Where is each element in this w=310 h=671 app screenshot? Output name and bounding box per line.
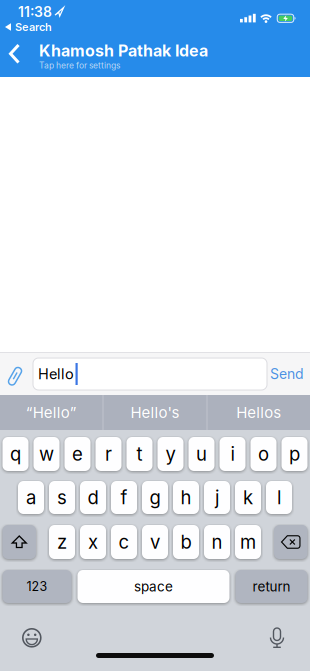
button[interactable]: “Hello” (0, 395, 102, 430)
staticText: a (26, 486, 36, 509)
staticText: o (258, 443, 269, 465)
button[interactable]: Search (0, 0, 47, 11)
button[interactable]: Send (0, 352, 46, 384)
staticText: k (243, 486, 253, 509)
staticText: g (149, 486, 160, 509)
staticText: q (10, 443, 21, 465)
staticText: b (180, 531, 191, 553)
staticText: Search (15, 20, 52, 34)
button[interactable]: p (281, 437, 307, 471)
staticText: r (105, 443, 112, 465)
button[interactable]: f (111, 481, 137, 514)
button[interactable]: b (173, 525, 199, 559)
button[interactable]: q (2, 437, 28, 471)
staticText: p (289, 443, 300, 465)
button[interactable]: z (49, 525, 75, 559)
staticText: v (150, 531, 160, 553)
button[interactable]: space (77, 570, 229, 603)
button[interactable]: s (49, 481, 75, 514)
button[interactable] (0, 430, 14, 450)
staticText: space (134, 578, 173, 595)
button[interactable]: x (80, 525, 106, 559)
button[interactable]: l (266, 481, 292, 514)
button[interactable]: c (111, 525, 137, 559)
button[interactable]: 123 (2, 570, 71, 603)
button[interactable] (0, 430, 20, 450)
staticText: Tap here for settings (39, 60, 120, 71)
staticText: “Hello” (26, 403, 77, 421)
staticText: Hello (38, 365, 74, 383)
button[interactable]: e (64, 437, 90, 471)
button[interactable] (2, 525, 36, 559)
staticText: Hellos (236, 403, 281, 421)
button[interactable]: i (219, 437, 245, 471)
button[interactable]: d (80, 481, 106, 514)
staticText: h (180, 486, 191, 509)
button[interactable]: u (188, 437, 214, 471)
staticText: w (39, 443, 54, 465)
staticText: d (87, 486, 98, 509)
staticText: s (57, 486, 67, 509)
staticText: t (136, 443, 142, 465)
button[interactable]: return (235, 570, 307, 603)
staticText: f (120, 486, 127, 509)
button[interactable]: Hello's (103, 395, 206, 430)
staticText: u (196, 443, 207, 465)
button[interactable]: Khamosh Pathak Idea (0, 0, 169, 30)
staticText: Khamosh Pathak Idea (39, 41, 208, 60)
staticText: i (230, 443, 234, 465)
button[interactable]: t (126, 437, 152, 471)
staticText: c (118, 531, 129, 553)
button[interactable]: j (204, 481, 230, 514)
button[interactable]: y (157, 437, 183, 471)
button[interactable] (0, 352, 16, 372)
button[interactable]: r (95, 437, 121, 471)
button[interactable]: m (235, 525, 261, 559)
staticText: x (88, 531, 98, 553)
staticText: n (211, 531, 222, 553)
staticText: 11:38 (18, 3, 52, 20)
button[interactable]: o (250, 437, 276, 471)
staticText: return (252, 578, 290, 595)
staticText: Send (270, 365, 304, 382)
staticText: j (215, 486, 219, 509)
staticText: z (57, 531, 67, 553)
button[interactable]: k (235, 481, 261, 514)
button[interactable]: w (33, 437, 59, 471)
button[interactable]: Hellos (207, 395, 310, 430)
staticText: y (165, 443, 175, 465)
button[interactable]: n (204, 525, 230, 559)
button[interactable] (274, 525, 307, 559)
button[interactable]: Hello (0, 352, 234, 384)
button[interactable]: g (142, 481, 168, 514)
button[interactable]: h (173, 481, 199, 514)
button[interactable]: a (18, 481, 44, 514)
staticText: 123 (26, 579, 47, 594)
staticText: l (277, 486, 281, 509)
staticText: Hello's (130, 403, 179, 421)
staticText: e (72, 443, 83, 465)
button[interactable]: v (142, 525, 168, 559)
staticText: m (240, 531, 256, 553)
